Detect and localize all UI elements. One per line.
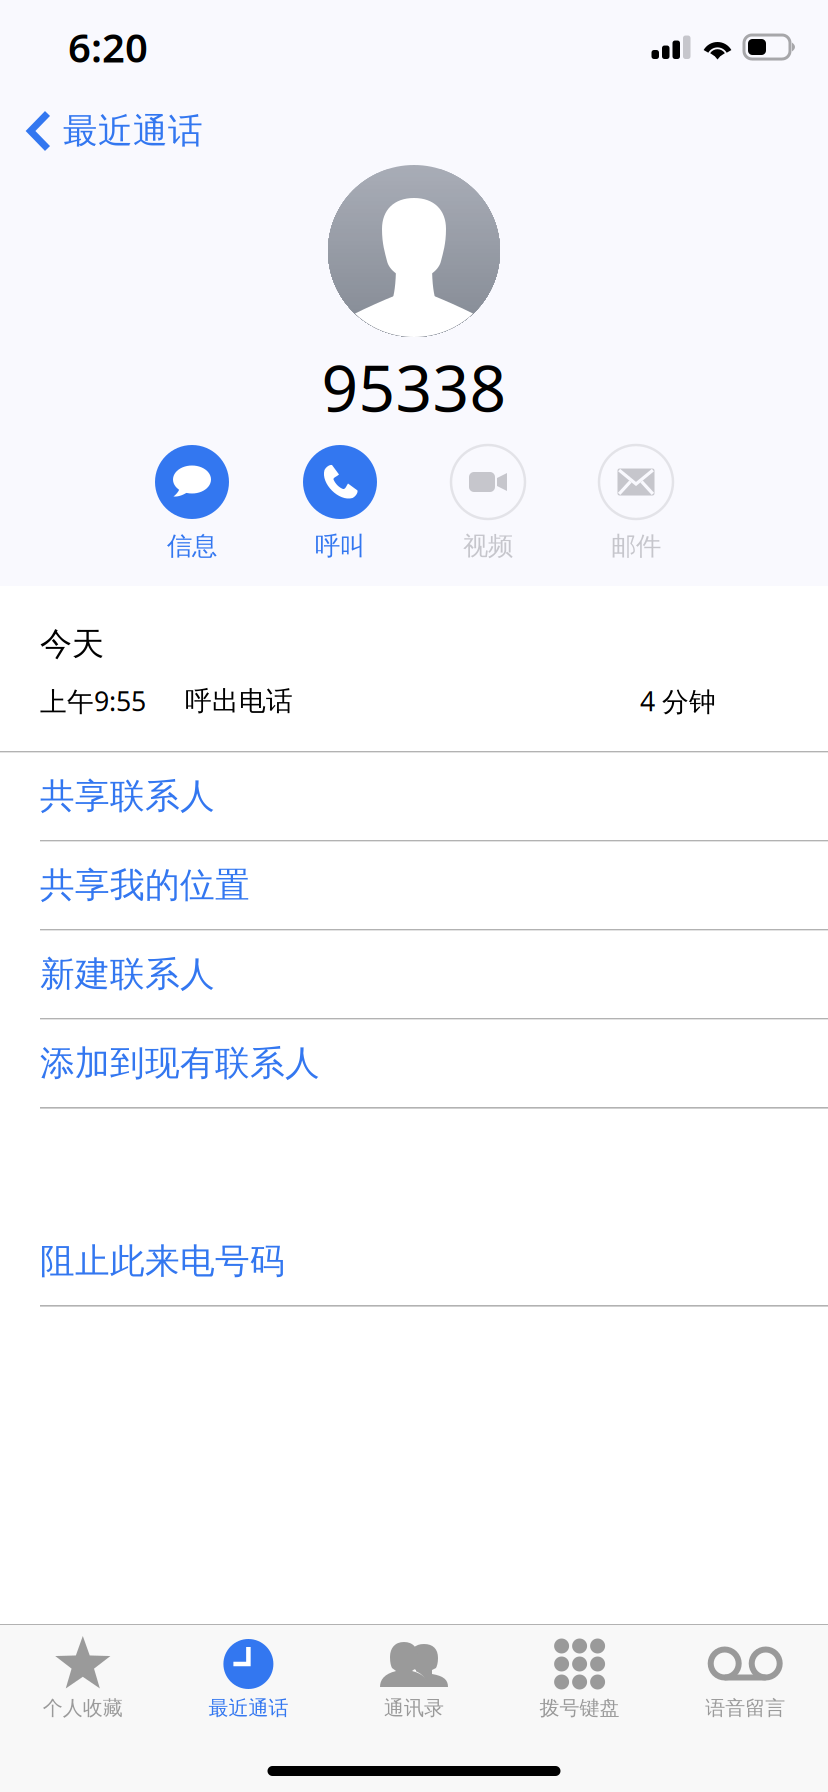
staticText: 通讯录 (384, 1696, 444, 1720)
staticText: 拨号键盘 (540, 1696, 620, 1720)
staticText: 上午9:55 (40, 683, 146, 719)
button[interactable]: 呼叫 (266, 445, 414, 561)
button[interactable]: 拨号键盘 (497, 1625, 662, 1722)
staticText: 邮件 (611, 530, 661, 561)
staticText: 呼叫 (315, 530, 365, 561)
staticText: 最近通话 (208, 1696, 288, 1720)
staticText: 新建联系人 (40, 953, 215, 996)
staticText: 语音留言 (705, 1696, 785, 1720)
button[interactable]: 视频 (414, 445, 562, 561)
button[interactable]: 阻止此来电号码 (0, 1218, 828, 1305)
staticText: 阻止此来电号码 (40, 1240, 285, 1283)
staticText: 呼出电话 (185, 685, 293, 717)
staticText: 今天 (40, 624, 104, 664)
staticText: 6:20 (68, 20, 148, 73)
button[interactable]: 最近通话 (0, 88, 203, 160)
staticText: 4 分钟 (640, 683, 716, 719)
button[interactable]: 添加到现有联系人 (0, 1020, 828, 1107)
button[interactable]: 个人收藏 (0, 1625, 166, 1722)
staticText: 共享联系人 (40, 775, 215, 818)
button[interactable]: 语音留言 (662, 1625, 828, 1722)
button[interactable]: 共享联系人 (0, 753, 828, 840)
staticText: 信息 (167, 530, 217, 561)
staticText: 95338 (321, 344, 506, 429)
staticText: 视频 (463, 530, 513, 561)
button[interactable]: 最近通话 (166, 1625, 331, 1722)
button[interactable]: 通讯录 (331, 1625, 497, 1722)
button[interactable]: 信息 (118, 445, 266, 561)
button[interactable]: 新建联系人 (0, 931, 828, 1018)
staticText: 添加到现有联系人 (40, 1042, 320, 1085)
button[interactable]: 邮件 (562, 445, 710, 561)
staticText: 个人收藏 (43, 1696, 123, 1720)
button[interactable]: 共享我的位置 (0, 842, 828, 929)
staticText: 最近通话 (63, 110, 203, 152)
staticText: 共享我的位置 (40, 864, 250, 907)
